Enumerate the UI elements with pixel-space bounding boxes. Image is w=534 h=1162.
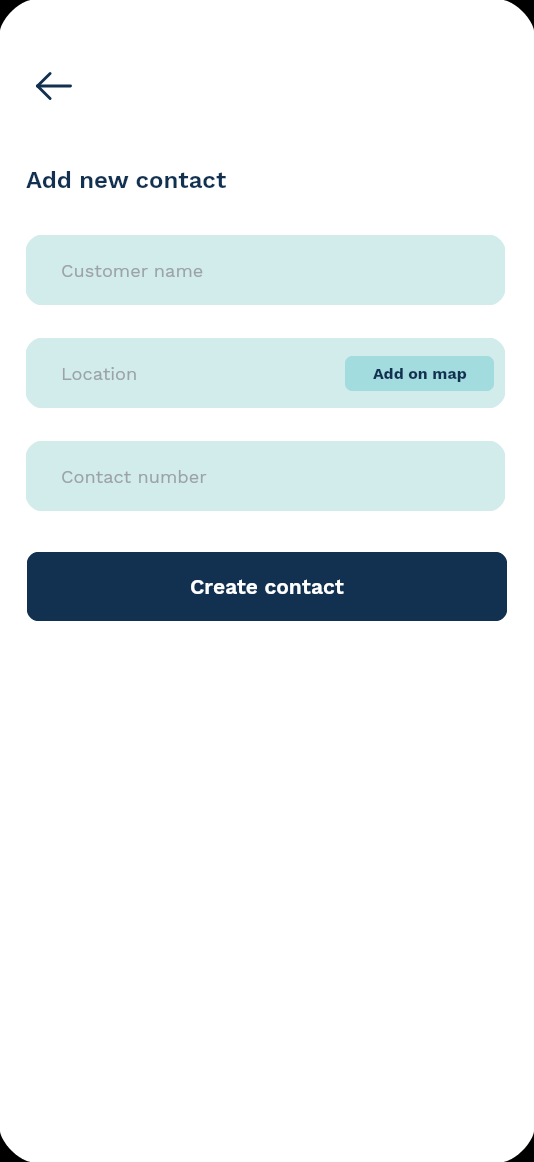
staticText: Customer name <box>61 260 204 281</box>
button[interactable]: Contact number <box>26 441 505 511</box>
staticText: Add new contact <box>26 166 227 194</box>
button[interactable]: Back <box>30 62 78 110</box>
staticText: Add on map <box>373 364 467 383</box>
button[interactable]: Add on map <box>345 356 494 391</box>
button[interactable]: Customer name <box>26 235 505 305</box>
button[interactable]: Location <box>26 338 505 408</box>
button[interactable]: Create contact <box>27 552 507 621</box>
staticText: Contact number <box>61 466 207 487</box>
staticText: Location <box>61 363 138 384</box>
staticText: Create contact <box>190 574 344 599</box>
